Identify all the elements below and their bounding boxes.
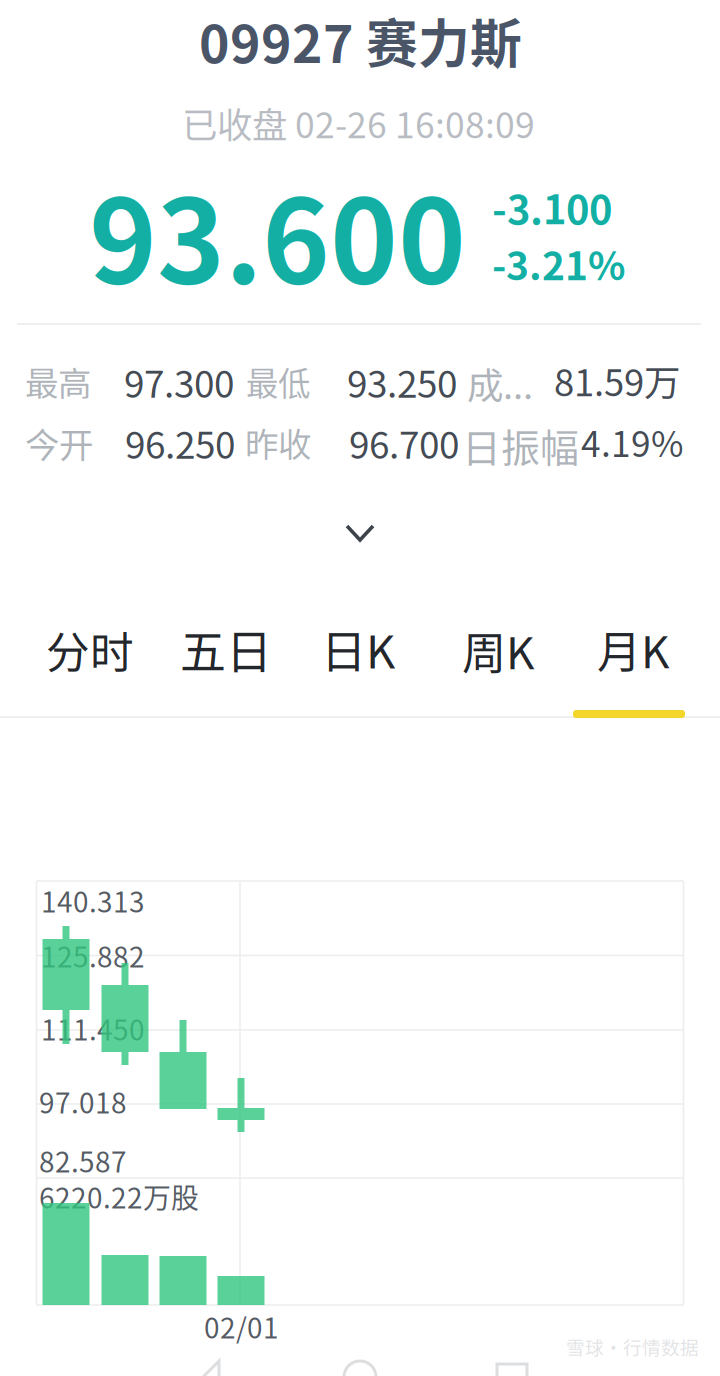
staticText: 最高: [25, 357, 91, 405]
staticText: 周K: [462, 618, 535, 682]
staticText: 93.600: [89, 150, 466, 316]
staticText: 4.19%: [581, 416, 684, 467]
staticText: 昨收: [245, 418, 311, 466]
button[interactable]: 日K: [0, 0, 720, 1376]
staticText: 五日: [180, 615, 272, 682]
staticText: 分时: [46, 618, 134, 681]
staticText: 月K: [597, 617, 670, 681]
button[interactable]: 月K: [0, 0, 720, 1376]
button[interactable]: 周K: [0, 0, 720, 1376]
button[interactable]: 展开更多行情: [0, 0, 720, 1376]
staticText: 96.700: [349, 416, 459, 469]
staticText: 02/01: [204, 1306, 279, 1346]
staticText: 雪球·行情数据: [566, 1333, 699, 1360]
staticText: -3.21%: [492, 235, 625, 291]
staticText: 最低: [246, 358, 310, 405]
staticText: 6220.22万股: [39, 1176, 199, 1216]
staticText: 93.250: [347, 355, 457, 408]
staticText: 97.018: [39, 1081, 127, 1121]
staticText: 82.587: [39, 1140, 127, 1180]
staticText: 今开: [25, 418, 93, 468]
staticText: 成...: [467, 357, 533, 410]
button[interactable]: 五日: [0, 0, 720, 1376]
staticText: 140.313: [41, 880, 145, 920]
staticText: 81.59万: [554, 354, 680, 407]
staticText: 日K: [321, 616, 395, 682]
staticText: 125.882: [41, 935, 145, 975]
button[interactable]: 分时: [0, 0, 720, 1376]
staticText: 09927 赛力斯: [199, 3, 522, 78]
staticText: 97.300: [124, 355, 234, 408]
staticText: -3.100: [492, 178, 612, 236]
staticText: 已收盘 02-26 16:08:09: [182, 97, 535, 148]
staticText: 111.450: [41, 1008, 145, 1048]
staticText: 96.250: [125, 416, 235, 469]
staticText: 日振幅: [462, 417, 579, 473]
